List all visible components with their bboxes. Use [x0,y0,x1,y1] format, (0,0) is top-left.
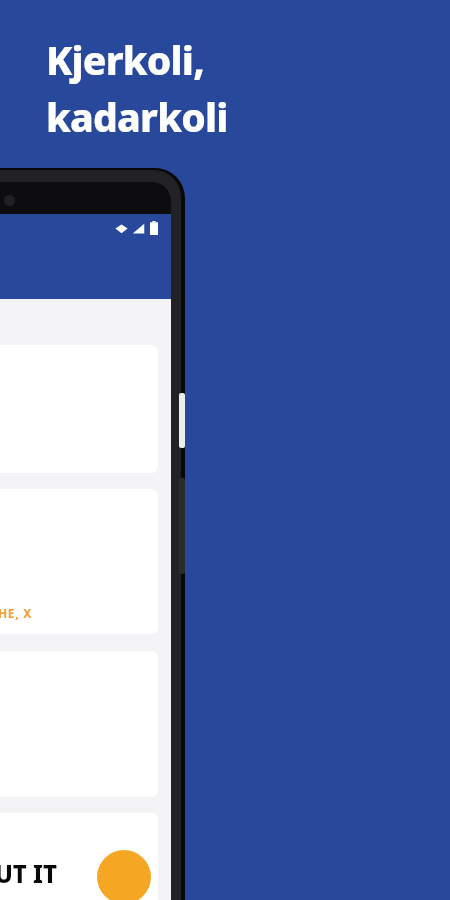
staticText: KARI VALLEY DUHE, X [0,605,32,621]
staticText: kadarkoli [46,90,228,143]
button[interactable]: ALL ABOUT IT [0,813,158,900]
staticText: Kjerkoli, [46,33,204,86]
button[interactable]: Fehanikoj [0,489,158,634]
button[interactable]: Add [97,850,151,900]
staticText: ALL ABOUT IT [0,857,58,890]
